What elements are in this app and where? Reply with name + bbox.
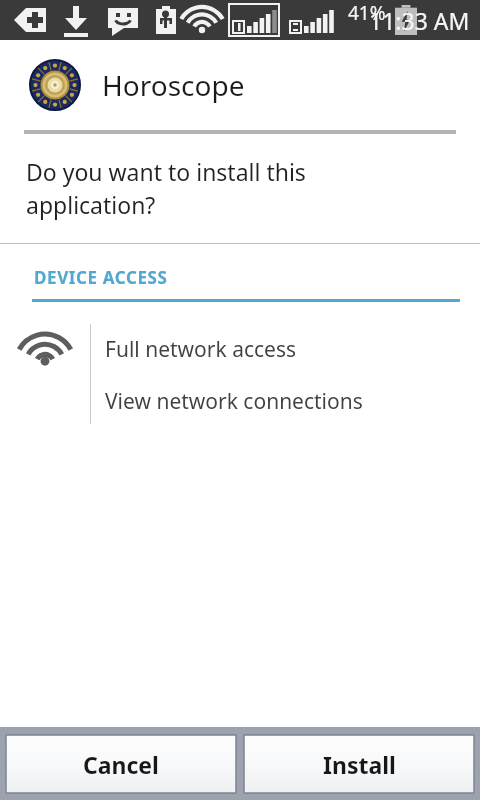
staticText: Cancel [83, 749, 159, 780]
staticText: 41% [348, 0, 386, 26]
staticText: View network connections [105, 387, 363, 416]
staticText: Install [323, 749, 396, 780]
staticText: DEVICE ACCESS [34, 266, 168, 289]
staticText: 11:33 AM [369, 5, 470, 36]
staticText: Do you want to install this application? [26, 156, 306, 221]
other: Network access [23, 332, 67, 366]
staticText: Full network access [105, 335, 297, 364]
button[interactable]: Cancel [6, 735, 236, 793]
staticText: Horoscope [102, 66, 245, 104]
button[interactable]: Install [244, 735, 474, 793]
button[interactable]: Network access [0, 324, 480, 424]
